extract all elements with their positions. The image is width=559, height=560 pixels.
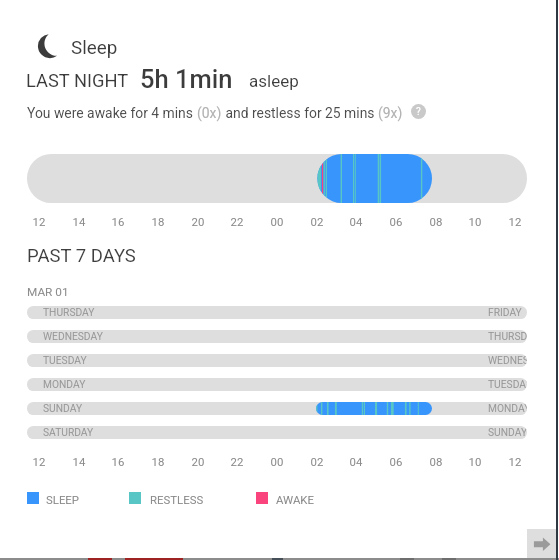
staticText: 00: [263, 215, 291, 228]
button[interactable]: RESTLESS: [129, 492, 195, 505]
staticText: 14: [65, 455, 93, 468]
staticText: (9x): [378, 105, 403, 121]
staticText: Sleep: [71, 37, 118, 59]
staticText: 12: [501, 455, 529, 468]
staticText: LAST NIGHT: [26, 70, 129, 91]
staticText: 08: [422, 215, 450, 228]
staticText: TUESDAY: [43, 354, 87, 366]
staticText: 16: [104, 215, 132, 228]
staticText: WEDNESDAY: [488, 354, 527, 366]
staticText: 02: [303, 215, 331, 228]
staticText: 06: [382, 455, 410, 468]
staticText: FRIDAY: [488, 306, 522, 318]
staticText: 20: [184, 455, 212, 468]
button[interactable]: TUESDAY: [27, 354, 527, 367]
button[interactable]: Help: [411, 104, 426, 119]
staticText: 22: [223, 215, 251, 228]
staticText: MONDAY: [488, 402, 527, 414]
staticText: SATURDAY: [43, 426, 94, 438]
button[interactable]: SATURDAY: [27, 426, 527, 439]
staticText: asleep: [249, 71, 299, 91]
button[interactable]: MONDAY: [27, 378, 527, 391]
staticText: AWAKE: [276, 493, 314, 506]
staticText: THURSDAY: [43, 306, 95, 318]
staticText: 14: [65, 215, 93, 228]
staticText: 10: [461, 215, 489, 228]
button[interactable]: AWAKE: [256, 492, 306, 505]
staticText: THURSDAY: [488, 330, 527, 342]
staticText: (0x): [197, 105, 222, 121]
button[interactable]: SLEEP: [27, 492, 73, 505]
staticText: 06: [382, 215, 410, 228]
staticText: 04: [342, 455, 370, 468]
button[interactable]: THURSDAY: [27, 306, 527, 319]
staticText: You were awake for 4 mins: [27, 105, 197, 121]
staticText: 20: [184, 215, 212, 228]
staticText: 00: [263, 455, 291, 468]
staticText: 18: [144, 215, 172, 228]
staticText: 12: [501, 215, 529, 228]
button[interactable]: Last night sleep timeline: [27, 154, 527, 203]
staticText: SLEEP: [46, 493, 80, 506]
staticText: SUNDAY: [43, 402, 83, 414]
staticText: MAR 01: [27, 285, 69, 299]
other: Sleep: [37, 32, 63, 58]
button[interactable]: WEDNESDAY: [27, 330, 527, 343]
staticText: WEDNESDAY: [43, 330, 103, 342]
staticText: 08: [422, 455, 450, 468]
staticText: 22: [223, 455, 251, 468]
staticText: and restless for 25 mins: [222, 105, 378, 121]
staticText: ?: [416, 106, 421, 118]
staticText: 12: [25, 455, 53, 468]
button[interactable]: Scroll right: [527, 529, 556, 558]
staticText: 12: [25, 215, 53, 228]
staticText: PAST 7 DAYS: [27, 245, 136, 267]
staticText: TUESDAY: [488, 378, 527, 390]
staticText: RESTLESS: [150, 493, 204, 506]
staticText: 18: [144, 455, 172, 468]
button[interactable]: SUNDAY: [27, 402, 527, 415]
staticText: SUNDAY: [488, 426, 527, 438]
staticText: 02: [303, 455, 331, 468]
staticText: MONDAY: [43, 378, 86, 390]
staticText: 04: [342, 215, 370, 228]
staticText: 10: [461, 455, 489, 468]
staticText: 16: [104, 455, 132, 468]
staticText: 5h 1min: [140, 64, 233, 94]
